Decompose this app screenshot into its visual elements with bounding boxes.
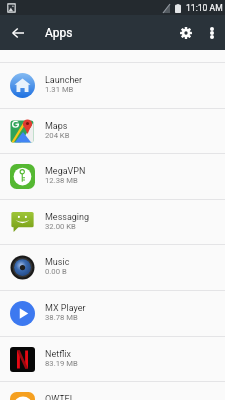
staticText: 11:10 AM <box>186 3 223 13</box>
staticText: OWTEL <box>45 394 75 400</box>
button[interactable]: MX Player <box>0 290 225 336</box>
staticText: 1.31 MB <box>45 85 74 94</box>
button[interactable]: Maps <box>0 108 225 154</box>
staticText: MegaVPN <box>45 166 86 177</box>
staticText: Netflix <box>45 349 71 360</box>
button[interactable]: Music <box>0 244 225 290</box>
button[interactable]: MegaVPN <box>0 153 225 199</box>
button[interactable]: Launcher <box>0 62 225 108</box>
staticText: 0.00 B <box>45 267 67 276</box>
staticText: Music <box>45 257 70 268</box>
staticText: Launcher <box>45 75 83 86</box>
staticText: 32.00 KB <box>45 222 76 231</box>
button[interactable]: OWTEL <box>0 381 225 400</box>
button[interactable]: More options <box>199 20 225 46</box>
staticText: 12.38 MB <box>45 176 78 185</box>
button[interactable]: Netflix <box>0 336 225 382</box>
staticText: Messaging <box>45 212 90 223</box>
staticText: 204 KB <box>45 131 70 140</box>
button[interactable]: Messaging <box>0 199 225 245</box>
staticText: Maps <box>45 121 68 132</box>
staticText: 83.19 MB <box>45 359 78 368</box>
staticText: MX Player <box>45 303 86 314</box>
staticText: 38.78 MB <box>45 313 78 322</box>
button[interactable]: Back <box>0 16 33 49</box>
button[interactable]: Settings <box>169 18 199 48</box>
staticText: Apps <box>45 26 73 40</box>
